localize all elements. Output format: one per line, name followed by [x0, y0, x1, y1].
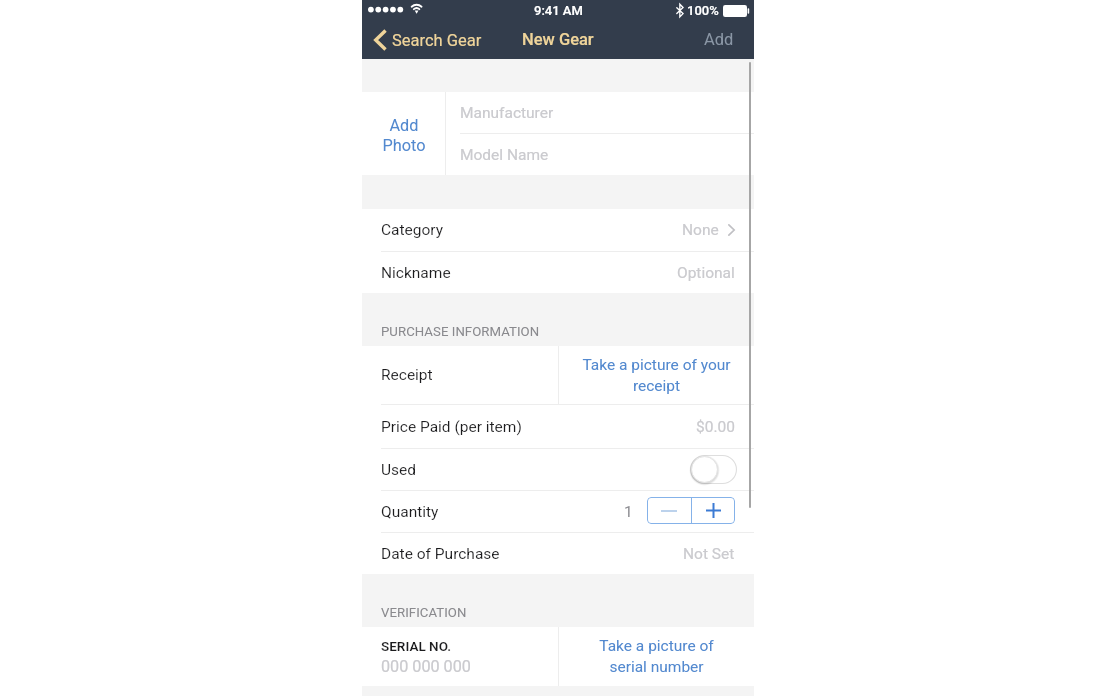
button[interactable]: Nickname: [362, 252, 754, 293]
staticText: None: [682, 221, 719, 239]
staticText: Quantity: [381, 503, 439, 521]
button[interactable]: Manufacturer: [446, 92, 754, 133]
staticText: Optional: [677, 264, 735, 282]
staticText: 100%: [687, 3, 719, 18]
staticText: Nickname: [381, 264, 451, 282]
button[interactable]: Take a picture of serial number: [559, 627, 754, 686]
button[interactable]: Increase quantity: [692, 497, 735, 524]
staticText: Search Gear: [392, 31, 482, 50]
button[interactable]: Price Paid (per item): [362, 405, 754, 448]
staticText: Add Photo: [382, 116, 426, 154]
staticText: Take a picture of your receipt: [582, 356, 731, 395]
staticText: PURCHASE INFORMATION: [381, 324, 540, 339]
staticText: SERIAL NO.: [381, 638, 452, 654]
staticText: Receipt: [381, 366, 433, 384]
button[interactable]: Used toggle: [690, 455, 737, 484]
staticText: 1: [624, 503, 633, 521]
staticText: VERIFICATION: [381, 605, 467, 620]
button[interactable]: Add Photo: [362, 92, 445, 175]
staticText: Category: [381, 221, 444, 239]
staticText: $0.00: [696, 418, 735, 436]
button[interactable]: Category: [362, 209, 754, 251]
button[interactable]: Take a picture of your receipt: [559, 346, 754, 404]
button[interactable]: Model Name: [446, 134, 754, 175]
button[interactable]: Search Gear: [362, 26, 492, 54]
button[interactable]: Date of Purchase: [362, 533, 754, 574]
staticText: 000 000 000: [381, 657, 471, 676]
staticText: Not Set: [683, 545, 735, 563]
staticText: Add: [704, 30, 734, 49]
staticText: New Gear: [522, 30, 594, 49]
staticText: 9:41 AM: [534, 3, 583, 18]
button[interactable]: Add: [688, 23, 754, 56]
staticText: Date of Purchase: [381, 545, 500, 563]
staticText: Model Name: [460, 146, 549, 164]
staticText: Price Paid (per item): [381, 418, 522, 436]
staticText: Used: [381, 461, 417, 479]
button[interactable]: Decrease quantity: [647, 497, 691, 524]
staticText: Manufacturer: [460, 104, 554, 122]
staticText: Take a picture of serial number: [599, 637, 714, 676]
